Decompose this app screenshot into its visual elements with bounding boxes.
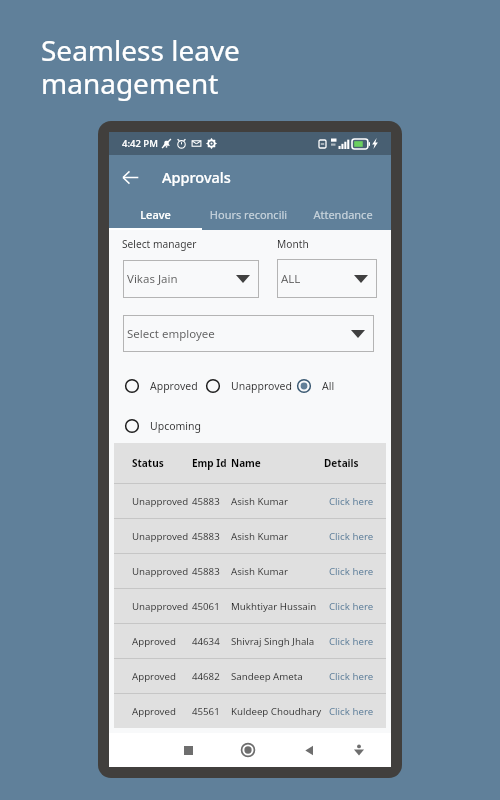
staticText: Asish Kumar <box>231 495 288 508</box>
staticText: 44682 <box>192 670 220 683</box>
staticText: Click here <box>329 530 374 543</box>
button[interactable]: Approved <box>114 624 386 658</box>
button[interactable]: All <box>297 379 335 393</box>
staticText: Seamless leave management <box>41 31 240 102</box>
button[interactable]: Hours reconcili <box>202 199 295 230</box>
staticText: Unapproved <box>231 379 292 393</box>
button[interactable]: Approved <box>125 379 198 393</box>
staticText: Attendance <box>295 207 391 222</box>
staticText: Click here <box>329 495 374 508</box>
staticText: Mukhtiyar Hussain <box>231 600 317 613</box>
staticText: Unapproved <box>132 530 189 543</box>
staticText: Approved <box>132 670 176 683</box>
button[interactable]: Approved <box>114 659 386 693</box>
button[interactable]: Approved <box>114 694 386 728</box>
button[interactable]: Unapproved <box>206 379 292 393</box>
staticText: Unapproved <box>132 600 189 613</box>
button[interactable]: Upcoming <box>125 419 201 433</box>
staticText: Asish Kumar <box>231 565 288 578</box>
staticText: All <box>322 379 335 393</box>
button[interactable]: Vikas Jain <box>123 260 259 298</box>
staticText: Approved <box>132 635 176 648</box>
staticText: ALL <box>281 271 301 287</box>
staticText: Unapproved <box>132 495 189 508</box>
staticText: Details <box>324 456 359 470</box>
button[interactable]: Leave <box>109 199 202 230</box>
button[interactable]: ALL <box>277 259 377 298</box>
staticText: Select manager <box>122 237 197 251</box>
staticText: Approved <box>132 705 176 718</box>
button[interactable]: Attendance <box>295 199 391 230</box>
staticText: Approved <box>150 379 198 393</box>
staticText: Shivraj Singh Jhala <box>231 635 315 648</box>
button[interactable]: Unapproved <box>114 554 386 588</box>
staticText: 45883 <box>192 495 220 508</box>
staticText: 45883 <box>192 530 220 543</box>
staticText: Click here <box>329 600 374 613</box>
staticText: Upcoming <box>150 419 201 433</box>
button[interactable]: Unapproved <box>114 519 386 553</box>
button[interactable]: Unapproved <box>114 484 386 518</box>
button[interactable]: Back <box>114 161 146 193</box>
button[interactable]: Hide keyboard <box>343 734 375 766</box>
button[interactable]: Select employee <box>123 315 374 352</box>
staticText: Select employee <box>127 326 215 342</box>
staticText: Leave <box>109 207 202 222</box>
staticText: Click here <box>329 635 374 648</box>
staticText: Click here <box>329 670 374 683</box>
staticText: 44634 <box>192 635 220 648</box>
staticText: Vikas Jain <box>127 271 178 287</box>
staticText: Month <box>277 237 309 251</box>
staticText: Click here <box>329 705 374 718</box>
staticText: Asish Kumar <box>231 530 288 543</box>
button[interactable]: Recents <box>172 734 204 766</box>
staticText: Emp Id <box>192 456 227 470</box>
staticText: Approvals <box>162 167 231 187</box>
staticText: Status <box>132 456 164 470</box>
button[interactable]: Unapproved <box>114 589 386 623</box>
button[interactable]: Back <box>293 734 325 766</box>
staticText: Sandeep Ameta <box>231 670 303 683</box>
staticText: Hours reconcili <box>202 207 295 222</box>
button[interactable]: Home <box>232 734 264 766</box>
staticText: Unapproved <box>132 565 189 578</box>
staticText: 4:42 PM <box>122 137 158 150</box>
staticText: Click here <box>329 565 374 578</box>
staticText: Kuldeep Choudhary <box>231 705 322 718</box>
staticText: 45561 <box>192 705 220 718</box>
staticText: Name <box>231 456 261 470</box>
staticText: 45883 <box>192 565 220 578</box>
staticText: 45061 <box>192 600 220 613</box>
